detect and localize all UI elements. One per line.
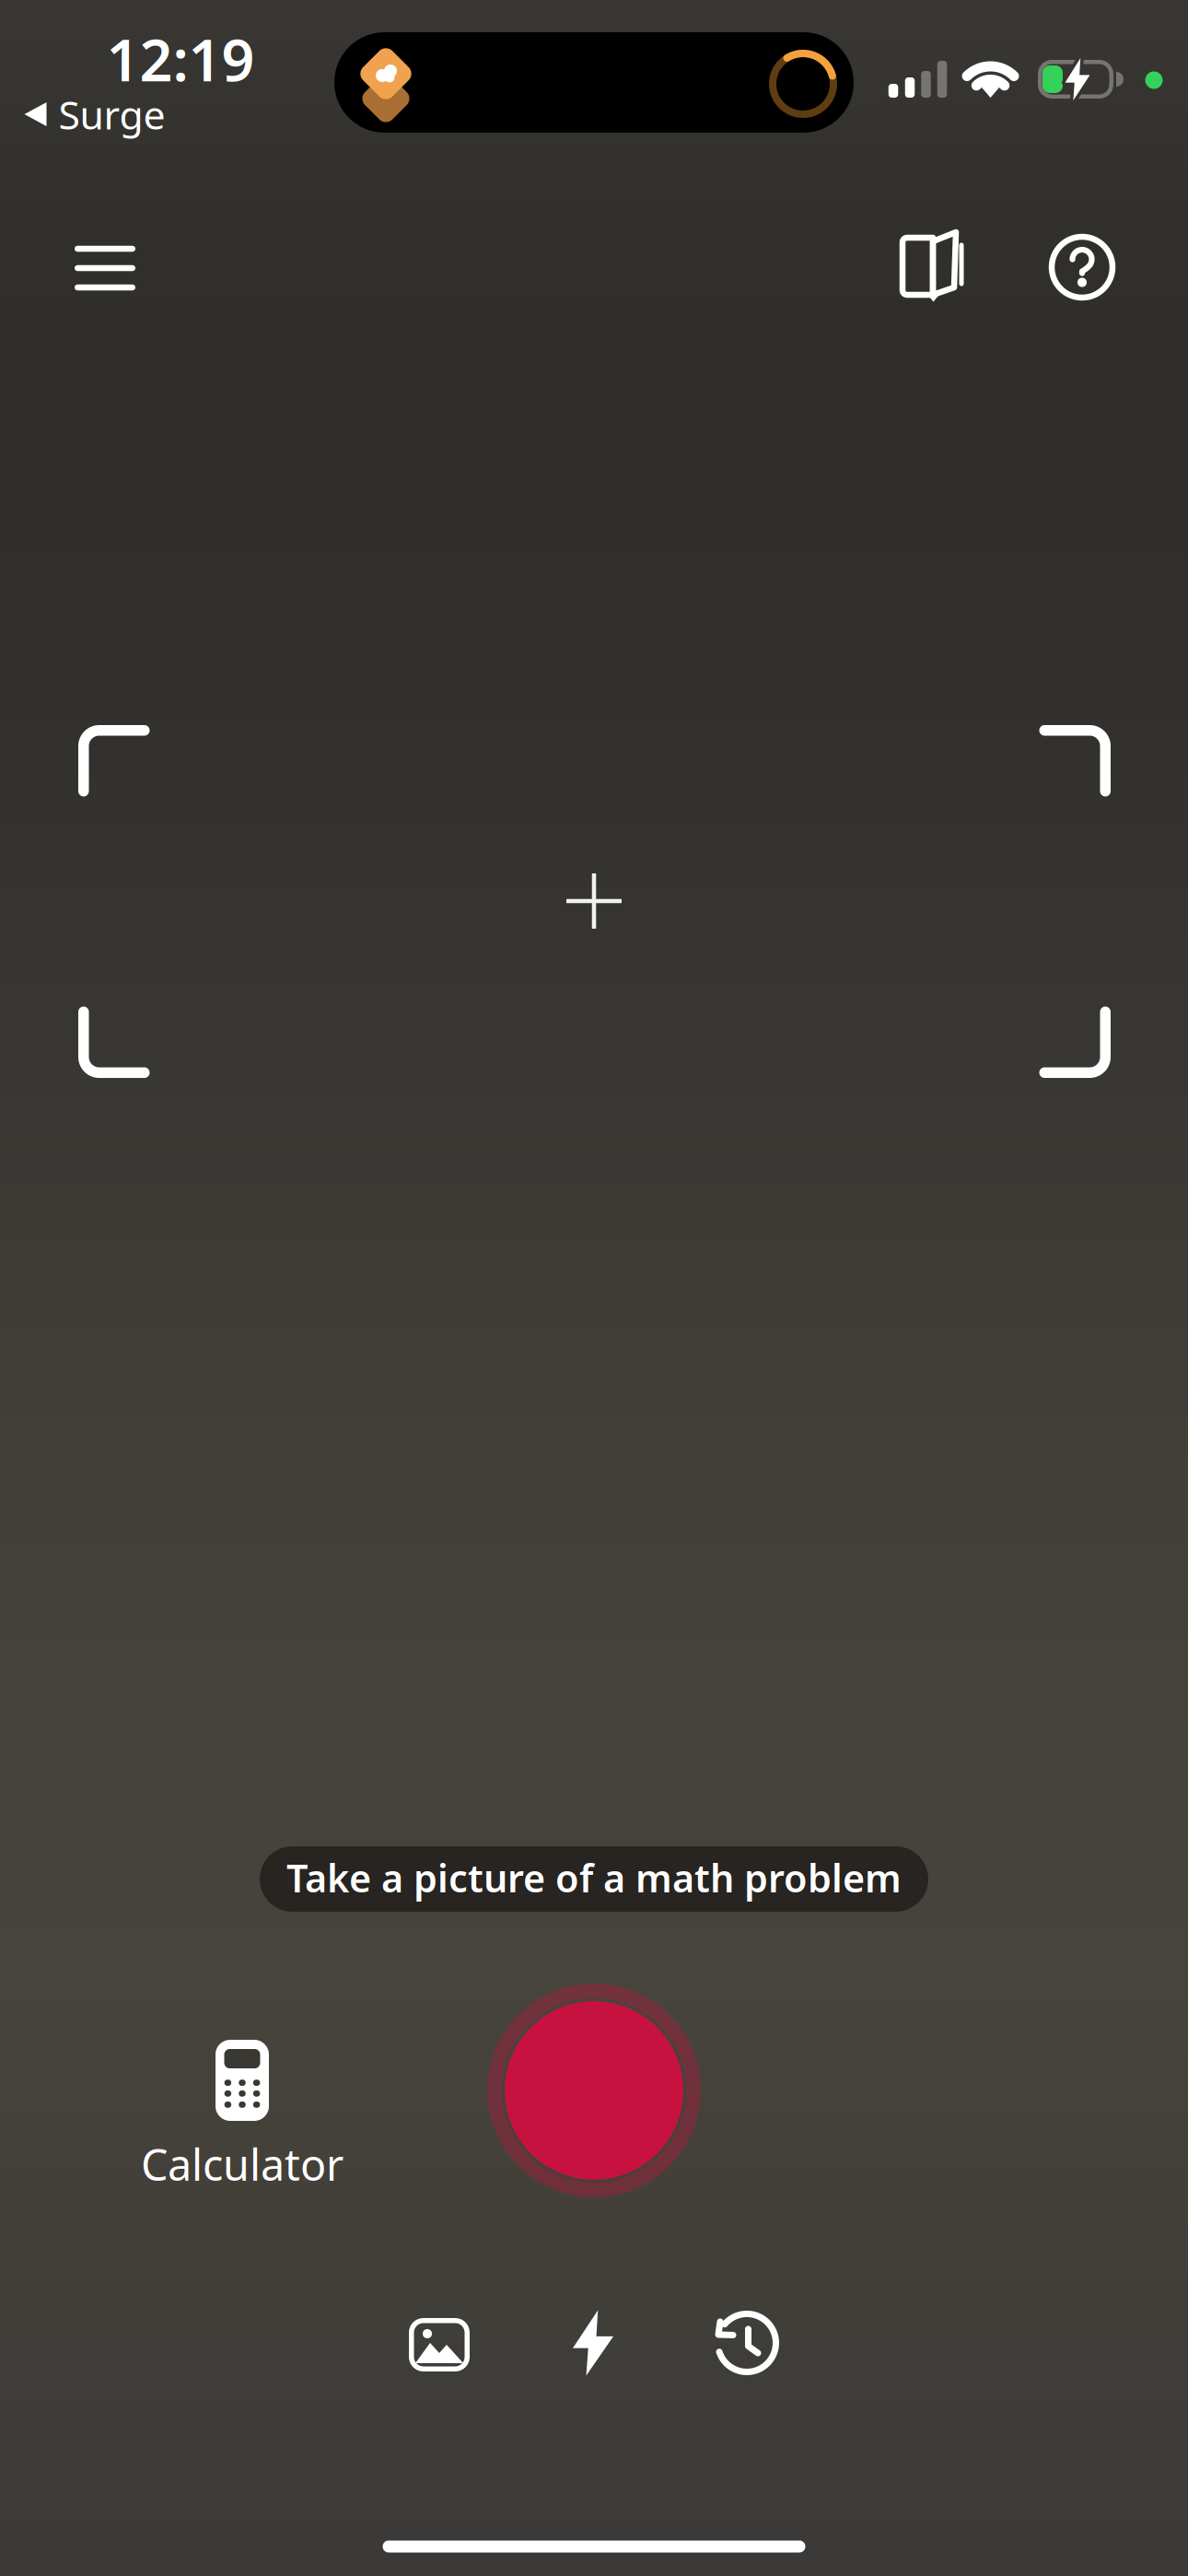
button[interactable]: Back to Surge [24, 88, 165, 140]
button[interactable]: History [714, 2310, 780, 2376]
button[interactable]: Photo library [409, 2318, 470, 2371]
button[interactable]: Help [1049, 234, 1115, 300]
button[interactable]: Textbooks [903, 232, 967, 302]
button[interactable]: Take photo [483, 1980, 705, 2201]
button[interactable]: Calculator [141, 2040, 344, 2193]
button[interactable]: Flash [573, 2310, 613, 2376]
staticText: 12:19 [106, 21, 255, 97]
button[interactable]: Menu [75, 246, 135, 291]
staticText: Take a picture of a math problem [286, 1852, 902, 1903]
staticText: Surge [58, 88, 165, 140]
staticText: Calculator [141, 2136, 344, 2193]
